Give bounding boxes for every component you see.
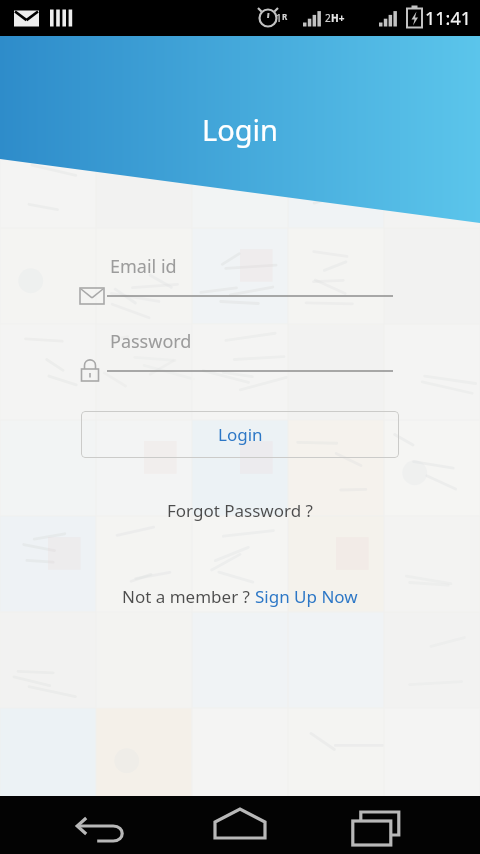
staticText: Password	[110, 329, 192, 354]
staticText: Sign Up Now	[255, 585, 358, 608]
staticText: 11:41	[425, 6, 472, 31]
button[interactable]: Forgot Password ?	[153, 492, 327, 529]
staticText: 2	[325, 11, 331, 25]
button[interactable]: Home	[160, 796, 320, 854]
button[interactable]: Sign Up Now	[255, 579, 358, 614]
button[interactable]: Back	[0, 796, 160, 854]
staticText: H+	[331, 11, 345, 25]
button[interactable]: Login	[81, 411, 399, 458]
button[interactable]: Recent apps	[320, 796, 480, 854]
staticText: Login	[218, 423, 263, 446]
button[interactable]: Email id	[0, 254, 480, 307]
staticText: Not a member ?	[122, 585, 255, 608]
staticText: Email id	[110, 254, 177, 279]
button[interactable]: Password	[0, 329, 480, 382]
staticText: R	[282, 11, 288, 22]
staticText: Forgot Password ?	[167, 499, 313, 522]
staticText: Login	[0, 110, 480, 149]
staticText: 1	[276, 11, 282, 25]
